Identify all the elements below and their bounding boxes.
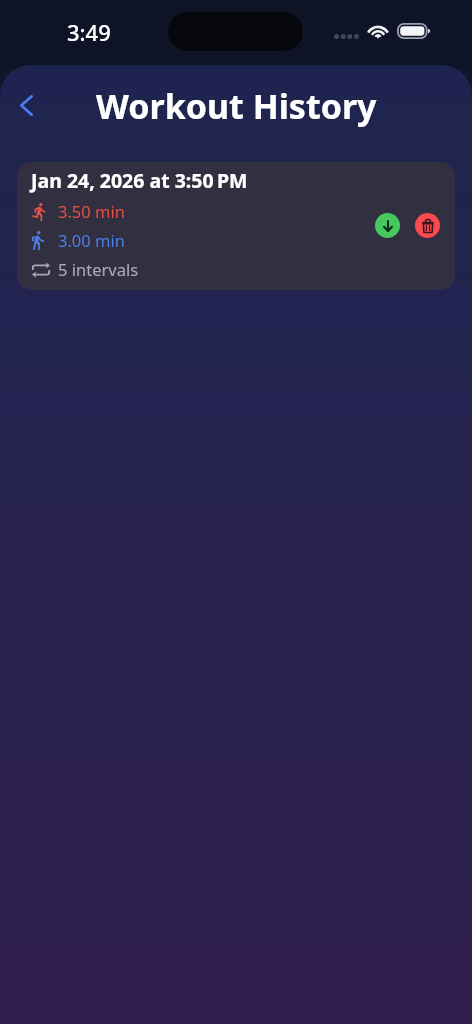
button[interactable]: Back [1, 77, 51, 133]
staticText: 5 intervals [58, 258, 139, 280]
button[interactable]: Jan 24, 2026 at 3:50 PM [17, 162, 455, 290]
staticText: Jan 24, 2026 at 3:50 PM [31, 167, 248, 194]
staticText: 3.00 min [58, 229, 125, 251]
staticText: 3.50 min [58, 200, 125, 222]
button[interactable]: Delete [415, 213, 440, 238]
staticText: Workout History [96, 83, 377, 129]
staticText: 3:49 [67, 17, 111, 47]
button[interactable]: Download [375, 213, 400, 238]
